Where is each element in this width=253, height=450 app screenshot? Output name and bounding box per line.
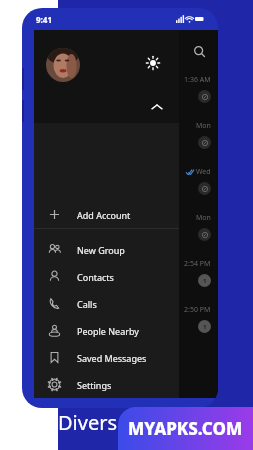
staticText: New Group [77, 244, 125, 256]
staticText: 9:41 [36, 14, 52, 25]
button[interactable]: Mon [34, 204, 218, 250]
staticText: Calls [77, 298, 97, 310]
staticText: People Nearby [77, 325, 139, 337]
button[interactable]: Saved Messages [34, 344, 179, 371]
button[interactable]: Mon [34, 112, 218, 158]
button[interactable]: Add Account [34, 201, 179, 228]
staticText: 1 [203, 277, 207, 285]
staticText: Saved Messages [77, 352, 147, 364]
staticText: Mon [196, 121, 211, 131]
staticText: Contacts [77, 271, 114, 283]
button[interactable]: Toggle dark mode [142, 52, 164, 74]
button[interactable]: Calls [34, 290, 179, 317]
button[interactable]: Collapse accounts [147, 97, 167, 117]
staticText: Divers [58, 409, 118, 436]
staticText: 2:50 PM [184, 305, 211, 315]
staticText: Mon [196, 213, 211, 223]
button[interactable]: New Group [34, 236, 179, 263]
staticText: Settings [77, 379, 112, 391]
staticText: 1 [203, 323, 207, 331]
staticText: MYAPKS.COM [128, 417, 243, 440]
staticText: 2:54 PM [184, 259, 211, 269]
button[interactable]: 2:54 PM [34, 250, 218, 296]
button[interactable]: 2:50 PM [34, 296, 218, 342]
button[interactable]: Contacts [34, 263, 179, 290]
button[interactable]: 1:36 AM [34, 66, 218, 112]
button[interactable]: Search [186, 38, 212, 64]
staticText: 1:36 AM [184, 75, 211, 85]
staticText: Add Account [77, 209, 131, 221]
button[interactable]: People Nearby [34, 317, 179, 344]
button[interactable]: Profile photo [46, 48, 80, 82]
staticText: Wed [196, 167, 211, 177]
button[interactable]: Settings [34, 371, 179, 398]
button[interactable]: Wed [34, 158, 218, 204]
